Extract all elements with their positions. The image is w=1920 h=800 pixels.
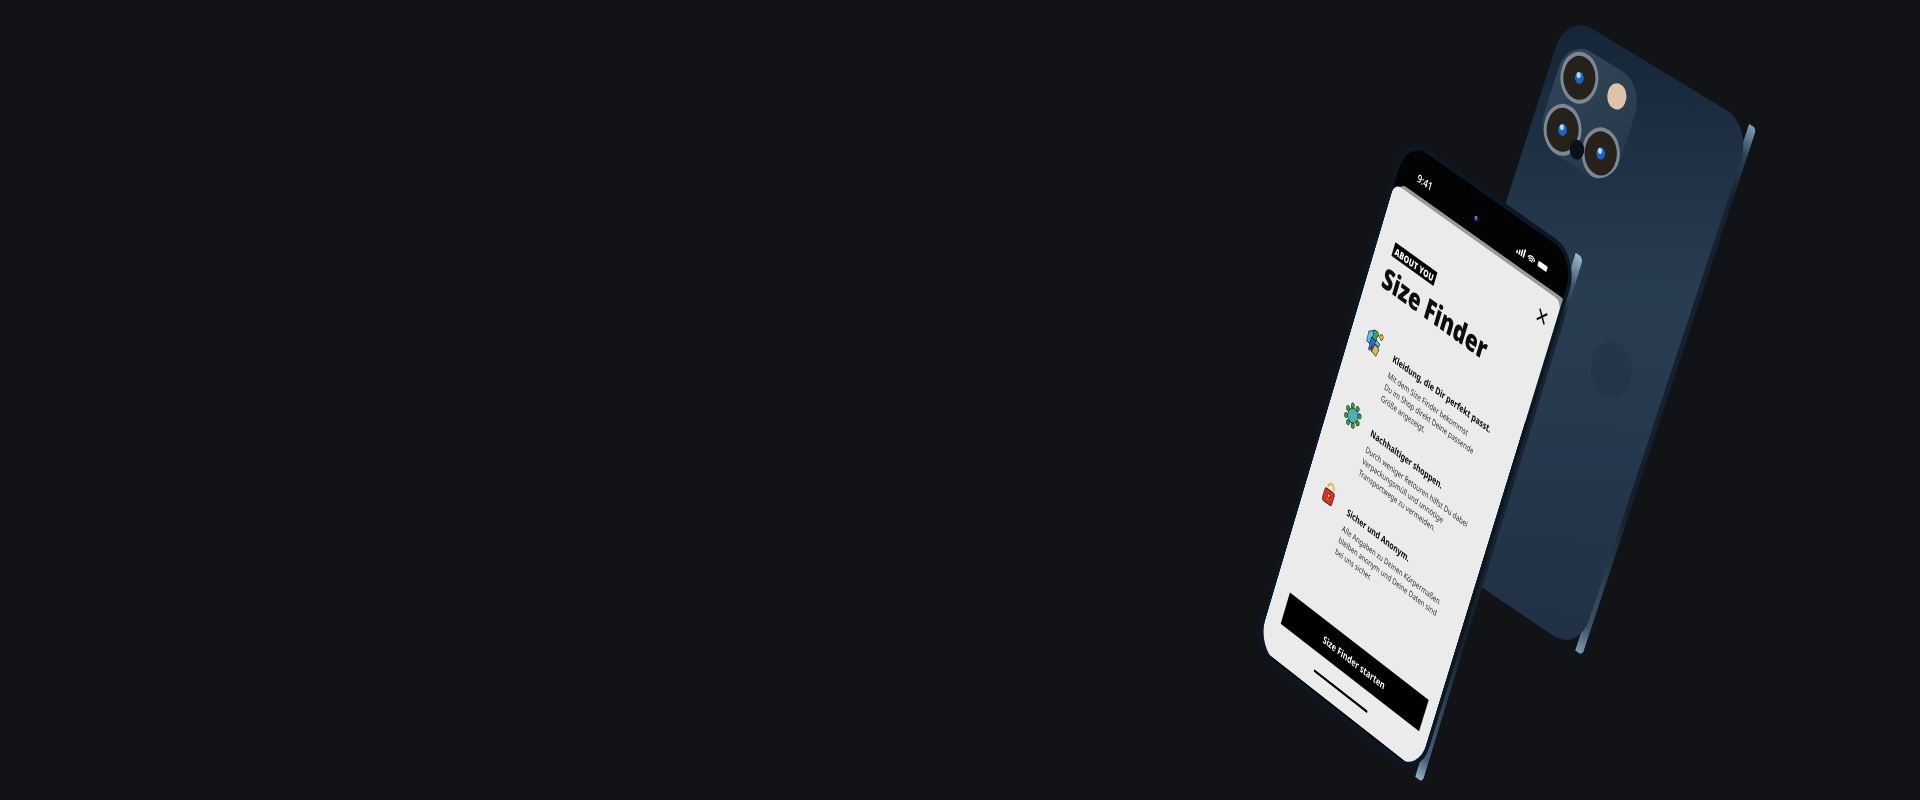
staticText: Nachhaltiger shoppen. <box>1369 426 1445 492</box>
staticText: Alle Angaben zu Deinen Körpermaßen bleib… <box>1334 523 1442 631</box>
button[interactable]: Schließen <box>1531 300 1552 332</box>
staticText: Size Finder starten <box>1321 632 1387 693</box>
staticText: Durch weniger Retouren hilfst Du dabei V… <box>1357 444 1469 553</box>
staticText: 9:41 <box>1415 170 1435 195</box>
staticText: Mit dem Size Finder bekommst Du im Shop … <box>1380 369 1479 469</box>
staticText: Kleidung, die Dir perfekt passt. <box>1391 352 1493 436</box>
staticText: ABOUT YOU <box>1393 244 1435 285</box>
staticText: Size Finder <box>1378 257 1493 369</box>
staticText: Sicher und Anonym. <box>1345 505 1411 565</box>
button[interactable]: Size Finder starten <box>1281 593 1429 731</box>
